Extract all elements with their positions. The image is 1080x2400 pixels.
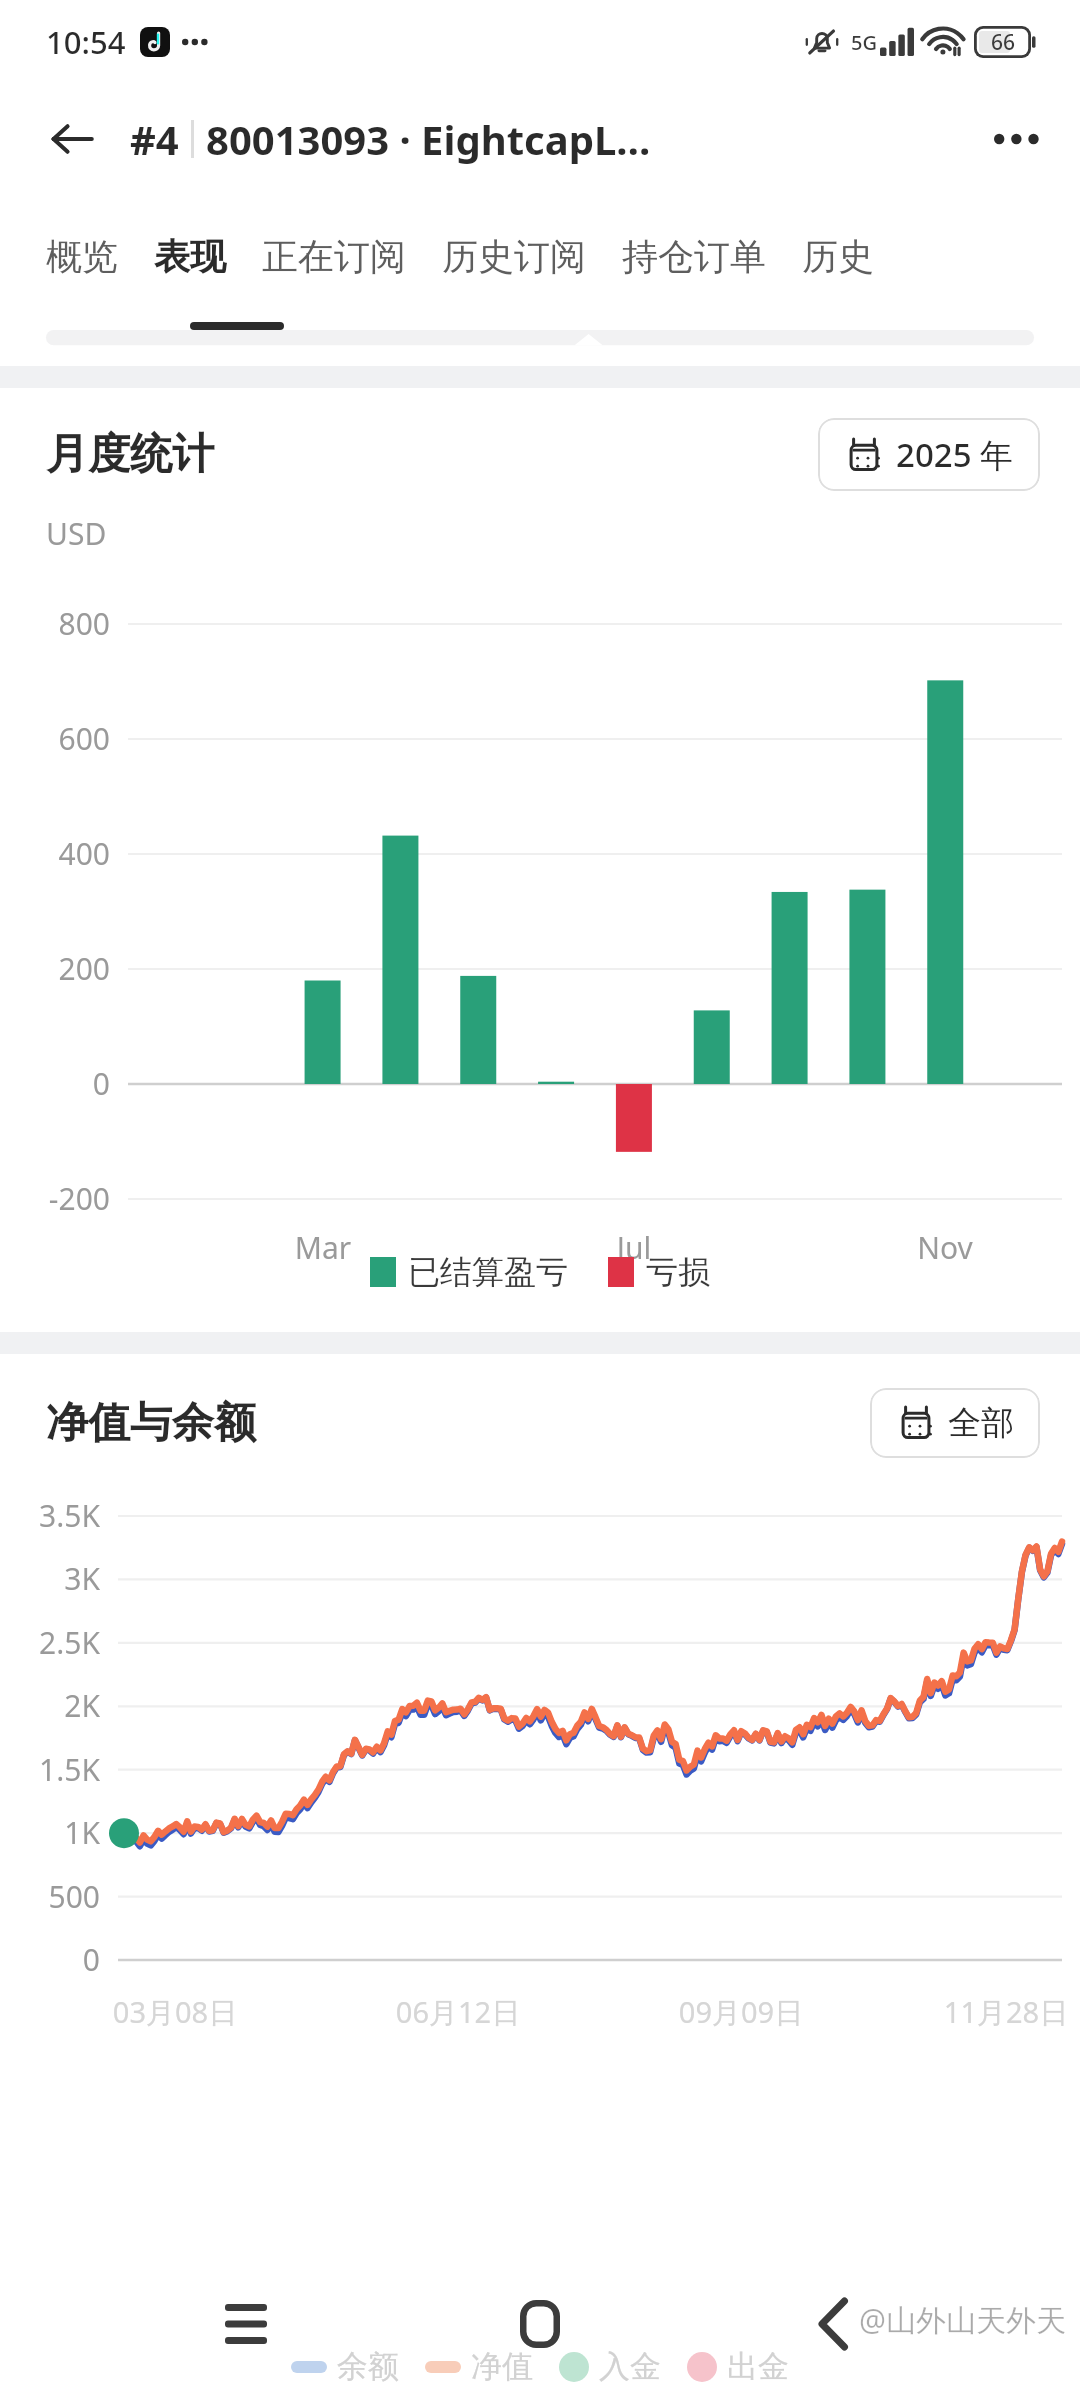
staticText: 净值与余额 — [46, 1397, 256, 1450]
staticText: 2.5K — [10, 1622, 100, 1663]
staticText: 66 — [991, 28, 1016, 57]
staticText: 11月28日 — [906, 1992, 1080, 2032]
staticText: 表现 — [154, 234, 226, 279]
staticText: 600 — [14, 718, 110, 759]
button[interactable]: Back — [34, 101, 110, 177]
staticText: #4 — [130, 112, 179, 166]
button[interactable]: 概览 — [28, 228, 136, 285]
staticText: 2K — [10, 1685, 100, 1726]
staticText: 历史 — [802, 234, 874, 279]
staticText: Jul — [574, 1227, 694, 1268]
staticText: 800 — [14, 603, 110, 644]
staticText: 500 — [10, 1876, 100, 1917]
staticText: 06月12日 — [358, 1992, 558, 2032]
staticText: 0 — [10, 1939, 100, 1980]
staticText: 持仓订单 — [622, 234, 766, 279]
staticText: 80013093 · EightcapL… — [206, 112, 651, 166]
staticText: 3K — [10, 1558, 100, 1599]
staticText: 03月08日 — [75, 1992, 275, 2032]
button[interactable]: 正在订阅 — [244, 228, 424, 285]
staticText: 10:54 — [46, 21, 126, 63]
staticText: USD — [46, 513, 107, 554]
button[interactable]: 持仓订单 — [604, 228, 784, 285]
button[interactable]: 表现 — [136, 228, 244, 285]
button[interactable]: 2025 年 — [818, 418, 1040, 491]
staticText: 200 — [14, 948, 110, 989]
staticText: Mar — [263, 1227, 383, 1268]
staticText: 历史订阅 — [442, 234, 586, 279]
staticText: 1.5K — [10, 1749, 100, 1790]
button[interactable]: 历史订阅 — [424, 228, 604, 285]
staticText: 亏损 — [646, 1252, 710, 1292]
button[interactable]: 全部 — [870, 1388, 1040, 1458]
staticText: 全部 — [948, 1402, 1014, 1444]
staticText: @山外山天外天 — [859, 2299, 1066, 2340]
button[interactable]: Recent apps — [198, 2276, 294, 2372]
staticText: 3.5K — [10, 1495, 100, 1536]
staticText: 正在订阅 — [262, 234, 406, 279]
button[interactable]: 历史 — [784, 228, 892, 285]
button[interactable]: More options — [982, 103, 1054, 175]
staticText: 月度统计 — [46, 428, 214, 481]
staticText: 0 — [14, 1063, 110, 1104]
button[interactable]: Back — [786, 2276, 882, 2372]
staticText: 出金 — [727, 2347, 789, 2386]
button[interactable]: Home — [492, 2276, 588, 2372]
staticText: 400 — [14, 833, 110, 874]
staticText: 入金 — [599, 2347, 661, 2386]
staticText: 余额 — [337, 2347, 399, 2386]
staticText: -200 — [14, 1178, 110, 1219]
staticText: 5G — [851, 29, 877, 56]
staticText: 09月09日 — [641, 1992, 841, 2032]
staticText: 已结算盈亏 — [408, 1252, 568, 1292]
staticText: 2025 年 — [896, 432, 1014, 477]
staticText: 1K — [10, 1812, 100, 1853]
staticText: Nov — [885, 1227, 1005, 1268]
staticText: 概览 — [46, 234, 118, 279]
staticText: 净值 — [471, 2347, 533, 2386]
